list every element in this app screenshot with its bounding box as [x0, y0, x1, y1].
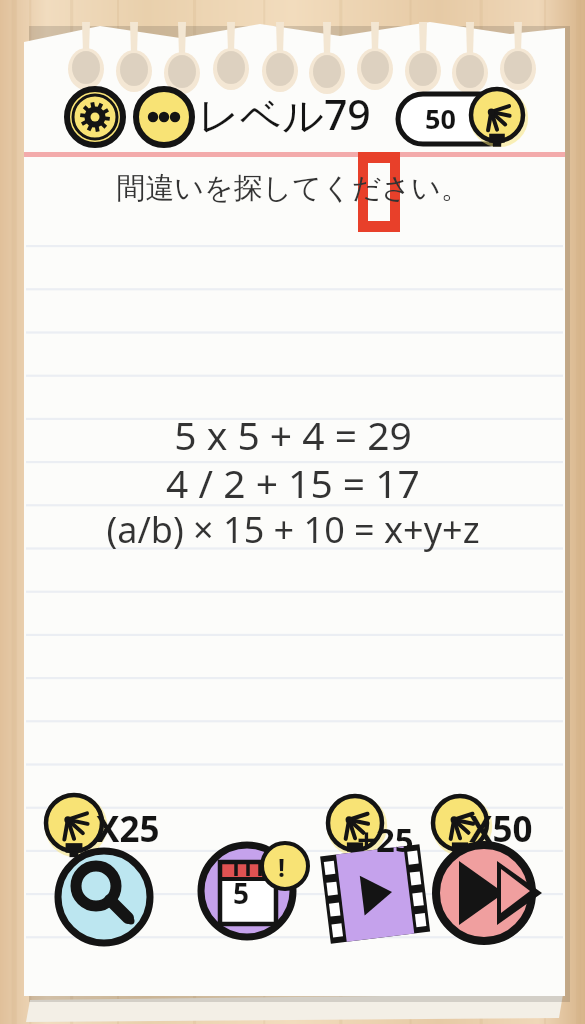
- staticText: レベル79: [198, 86, 371, 142]
- staticText: (a/b) × 15 + 10 = x+y+z: [106, 505, 480, 554]
- button[interactable]: Watch video for hints: [320, 790, 432, 948]
- staticText: 間違いを探してください。: [116, 170, 470, 207]
- staticText: X25: [96, 805, 160, 853]
- staticText: 50: [425, 100, 456, 137]
- staticText: X50: [469, 805, 533, 853]
- button[interactable]: Settings: [66, 88, 126, 148]
- button[interactable]: Skip level: [430, 790, 544, 948]
- staticText: 5: [233, 874, 250, 912]
- staticText: 5 x 5 + 4 = 29: [174, 408, 412, 461]
- staticText: +25: [357, 817, 414, 862]
- button[interactable]: Search hint: [52, 790, 160, 948]
- staticText: !: [278, 850, 286, 884]
- button[interactable]: Daily reward: [194, 834, 304, 948]
- staticText: 4 / 2 + 15 = 17: [166, 456, 420, 509]
- button[interactable]: More options: [134, 88, 194, 148]
- button[interactable]: Hint coins 50: [392, 88, 524, 146]
